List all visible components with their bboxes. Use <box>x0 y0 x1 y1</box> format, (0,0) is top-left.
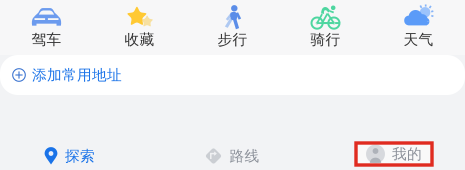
button[interactable]: 天气 <box>372 1 465 54</box>
staticText: 收藏 <box>124 30 154 48</box>
staticText: 驾车 <box>31 30 61 48</box>
staticText: 路线 <box>229 147 259 165</box>
button[interactable]: 骑行 <box>279 1 372 54</box>
staticText: 我的 <box>392 145 422 163</box>
button[interactable]: 路线 <box>204 147 259 165</box>
button[interactable]: 步行 <box>186 1 279 54</box>
staticText: 探索 <box>65 147 95 165</box>
staticText: 步行 <box>217 30 247 48</box>
button[interactable]: 添加常用地址 <box>0 55 465 95</box>
button[interactable]: 收藏 <box>93 1 186 54</box>
staticText: 天气 <box>403 30 433 48</box>
button[interactable]: 我的 <box>357 145 433 167</box>
staticText: 骑行 <box>310 30 340 48</box>
button[interactable]: 驾车 <box>0 1 93 54</box>
staticText: 添加常用地址 <box>32 66 122 84</box>
button[interactable]: 探索 <box>44 146 95 165</box>
